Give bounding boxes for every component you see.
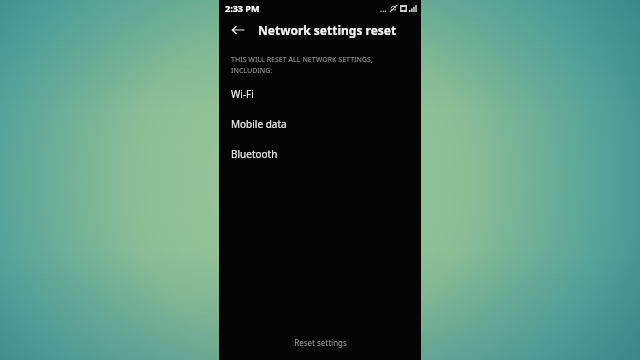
staticText: Network settings reset [258,22,397,38]
button[interactable]: Mobile data [219,116,421,132]
button[interactable]: Wi-Fi [219,86,421,102]
button[interactable]: Back [226,18,250,42]
staticText: THIS WILL RESET ALL NETWORK SETTINGS, IN… [231,55,373,75]
button[interactable]: Bluetooth [219,146,421,162]
staticText: 2:33 PM [225,2,260,14]
staticText: Reset settings [294,337,347,348]
button[interactable]: Reset settings [219,329,421,355]
staticText: Bluetooth [231,147,278,161]
staticText: ... [380,3,387,14]
staticText: Mobile data [231,117,287,131]
staticText: Wi-Fi [231,87,254,101]
